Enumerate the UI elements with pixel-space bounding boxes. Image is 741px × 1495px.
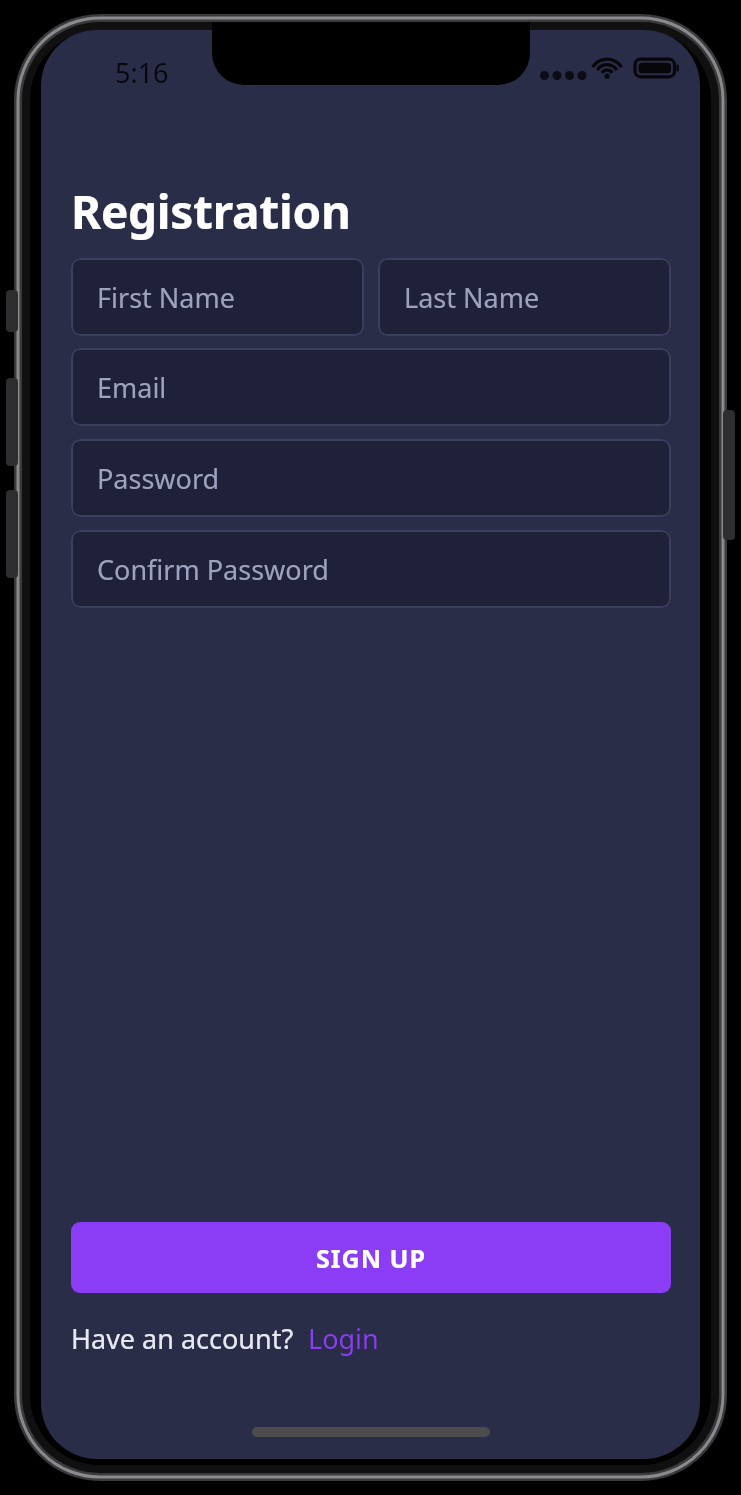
button[interactable]: Login — [308, 1320, 379, 1357]
staticText: Password — [97, 460, 220, 497]
staticText: Confirm Password — [97, 551, 329, 588]
staticText: Registration — [71, 180, 351, 243]
staticText: Have an account? — [71, 1320, 294, 1357]
staticText: Email — [97, 369, 167, 406]
button[interactable]: Email — [71, 348, 671, 426]
button[interactable]: First Name — [71, 258, 364, 336]
staticText: 5:16 — [115, 54, 169, 91]
staticText: Login — [308, 1320, 379, 1357]
button[interactable]: Confirm Password — [71, 530, 671, 608]
staticText: First Name — [97, 279, 235, 316]
staticText: SIGN UP — [316, 1241, 426, 1275]
button[interactable]: Last Name — [378, 258, 671, 336]
staticText: Last Name — [404, 279, 540, 316]
button[interactable]: Password — [71, 439, 671, 517]
button[interactable]: SIGN UP — [71, 1222, 671, 1293]
